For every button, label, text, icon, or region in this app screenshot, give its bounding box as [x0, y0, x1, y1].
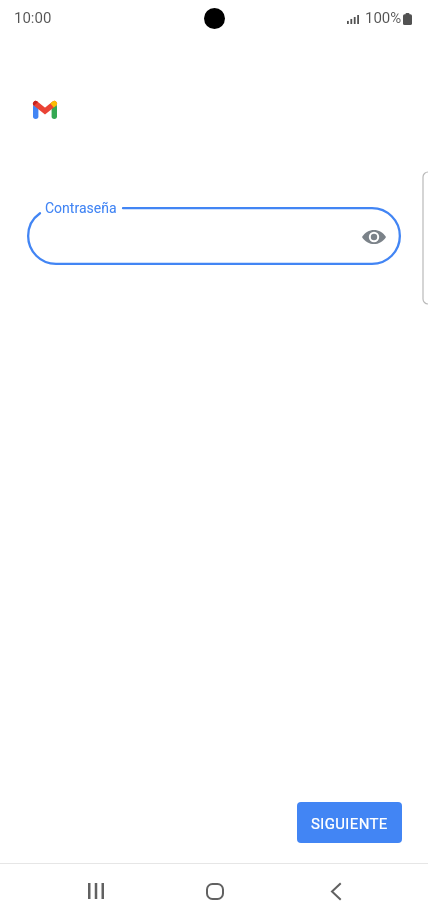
staticText: SIGUIENTE: [311, 815, 388, 833]
staticText: 10:00: [14, 9, 52, 27]
button[interactable]: Atrás: [308, 864, 364, 917]
button[interactable]: Recientes: [68, 864, 124, 917]
staticText: 100%: [365, 9, 402, 27]
staticText: Contraseña: [45, 200, 117, 216]
button[interactable]: SIGUIENTE: [297, 802, 402, 843]
button[interactable]: Mostrar contraseña: [358, 221, 390, 253]
button[interactable]: Inicio: [187, 864, 243, 917]
button[interactable]: Contraseña: [27, 207, 401, 265]
